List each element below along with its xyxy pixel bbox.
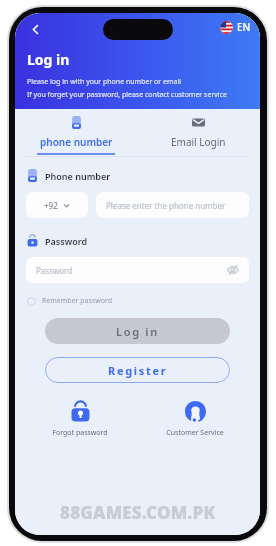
staticText: If you forget your password, please cont… <box>27 90 227 100</box>
staticText: 88GAMES.COM.PK <box>60 501 216 524</box>
button[interactable]: EN <box>218 18 253 36</box>
button[interactable]: phone number <box>15 109 137 156</box>
staticText: Email Login <box>171 135 226 149</box>
other: Show password <box>226 263 240 277</box>
button[interactable]: Forgot password <box>31 399 129 439</box>
staticText: Remember password <box>42 296 113 306</box>
button[interactable]: Please enter the phone number <box>96 192 249 218</box>
staticText: Password <box>36 265 226 276</box>
staticText: Password <box>45 235 88 247</box>
button[interactable]: Password <box>26 257 249 283</box>
staticText: Log in <box>27 50 70 69</box>
staticText: EN <box>237 20 251 34</box>
staticText: phone number <box>40 135 113 149</box>
staticText: Please enter the phone number <box>106 200 226 211</box>
staticText: Log in <box>116 324 159 339</box>
button[interactable]: Remember password <box>27 296 113 306</box>
button[interactable]: Register <box>45 357 230 383</box>
button[interactable]: Back <box>20 14 50 44</box>
staticText: Register <box>108 363 168 378</box>
staticText: +92 <box>44 200 58 211</box>
button[interactable]: Log in <box>45 318 230 344</box>
staticText: Phone number <box>45 170 111 182</box>
button[interactable]: Customer Service <box>146 399 244 439</box>
button[interactable]: +92 <box>26 192 88 218</box>
staticText: Please log in with your phone number or … <box>27 77 182 87</box>
staticText: Forgot password <box>31 428 129 438</box>
staticText: Customer Service <box>146 428 244 438</box>
button[interactable]: Email Login <box>137 109 260 156</box>
